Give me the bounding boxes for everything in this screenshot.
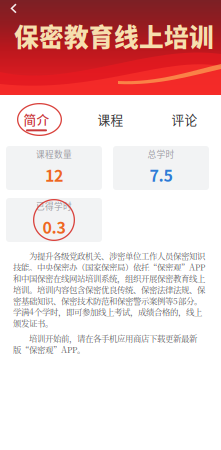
staticText: 0.3 xyxy=(42,215,65,238)
button[interactable]: 简介 xyxy=(0,95,73,146)
button[interactable]: 返回 xyxy=(0,0,28,20)
staticText: 保密教育线上培训 xyxy=(14,18,214,54)
staticText: 12 xyxy=(45,163,63,186)
staticText: 简介 xyxy=(23,110,49,128)
staticText: 已得学时 xyxy=(36,200,72,212)
staticText: 7.5 xyxy=(149,163,172,186)
button[interactable]: 评论 xyxy=(147,95,221,146)
staticText: 为提升各级党政机关、涉密单位工作人员保密知识技能。中央保密办（国家保密局）依托“… xyxy=(13,250,205,329)
staticText: 课程数量 xyxy=(36,148,72,160)
staticText: 课程 xyxy=(97,110,123,128)
staticText: 评论 xyxy=(171,110,197,128)
staticText: 培训开始前，请在各手机应用商店下载更新最新版“保密观”APP。 xyxy=(13,333,197,355)
button[interactable]: 课程 xyxy=(73,95,147,146)
staticText: 总学时 xyxy=(147,148,174,160)
